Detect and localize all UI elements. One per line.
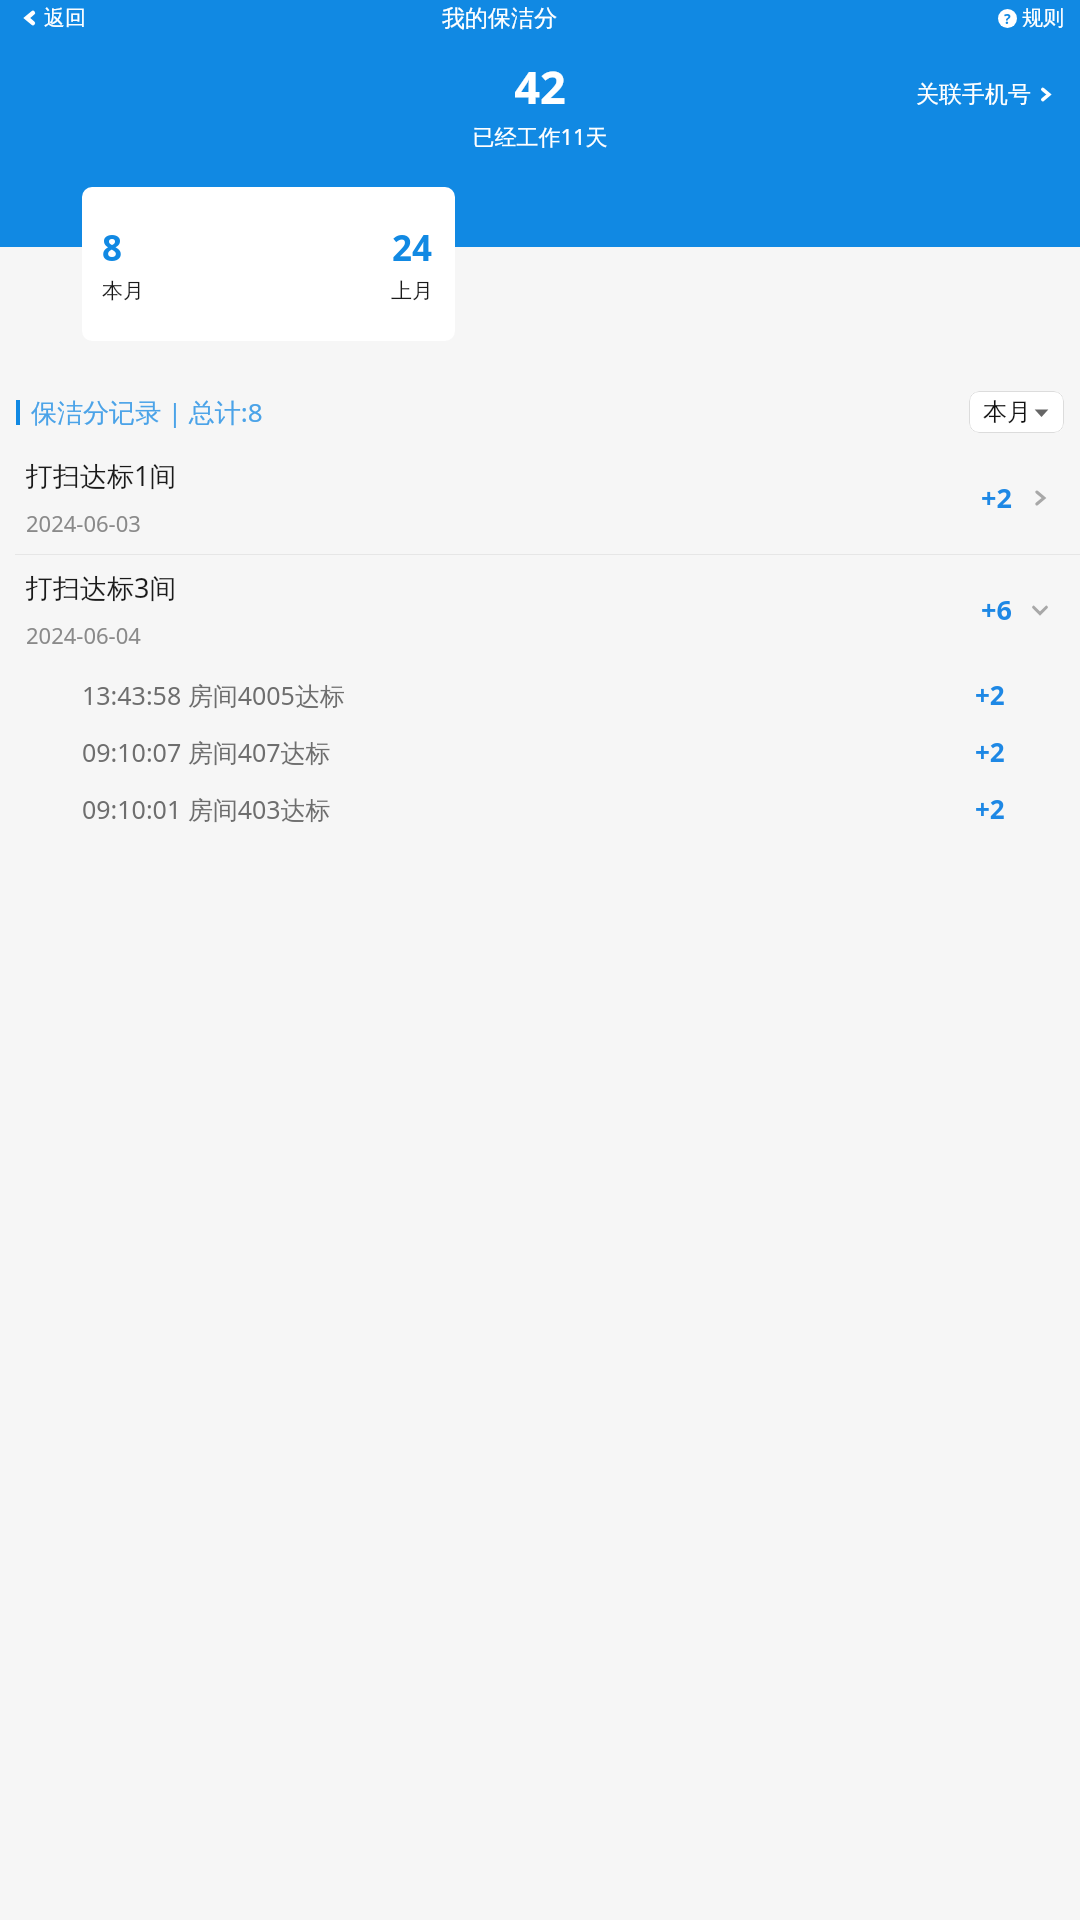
staticText: 打扫达标1间 [26, 457, 177, 494]
staticText: 2024-06-03 [26, 508, 141, 538]
button[interactable]: 09:10:07 房间407达标 [0, 723, 1080, 780]
button[interactable]: 13:43:58 房间4005达标 [0, 666, 1080, 723]
button[interactable]: 打扫达标3间 [0, 555, 1080, 666]
staticText: 已经工作11天 [0, 121, 1080, 151]
staticText: 返回 [44, 5, 86, 31]
staticText: 42 [0, 56, 1080, 117]
staticText: 规则 [1022, 5, 1064, 31]
staticText: +2 [981, 479, 1012, 516]
staticText: +2 [975, 791, 1005, 826]
staticText: 本月 [983, 397, 1031, 427]
staticText: 本月 [102, 278, 144, 304]
button[interactable]: ? [994, 1, 1068, 35]
button[interactable]: 关联手机号 [912, 76, 1058, 113]
staticText: 8 [102, 224, 123, 272]
other: Collapse details [1030, 600, 1050, 620]
button[interactable]: 返回 [18, 1, 90, 35]
staticText: 09:10:01 房间403达标 [82, 792, 331, 826]
staticText: 上月 [391, 278, 433, 304]
staticText: +6 [981, 591, 1012, 628]
button[interactable]: 打扫达标1间 [0, 443, 1080, 554]
staticText: ? [1004, 9, 1011, 28]
staticText: 保洁分记录 | 总计:8 [31, 394, 263, 430]
staticText: 我的保洁分 [442, 4, 557, 33]
other: Open details [1030, 488, 1050, 508]
staticText: +2 [975, 734, 1005, 769]
staticText: 09:10:07 房间407达标 [82, 735, 331, 769]
staticText: +2 [975, 677, 1005, 712]
button[interactable]: 09:10:01 房间403达标 [0, 780, 1080, 837]
staticText: 关联手机号 [916, 80, 1031, 109]
staticText: 24 [392, 224, 433, 272]
staticText: 打扫达标3间 [26, 569, 177, 606]
staticText: 13:43:58 房间4005达标 [82, 678, 345, 712]
staticText: 2024-06-04 [26, 620, 141, 650]
button[interactable]: 本月 [969, 391, 1064, 433]
